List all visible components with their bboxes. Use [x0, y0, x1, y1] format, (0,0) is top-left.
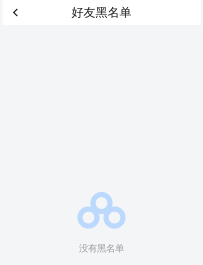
button[interactable]: Back — [2, 0, 28, 25]
staticText: 好友黑名单 — [71, 5, 131, 20]
staticText: 没有黑名单 — [79, 242, 124, 254]
